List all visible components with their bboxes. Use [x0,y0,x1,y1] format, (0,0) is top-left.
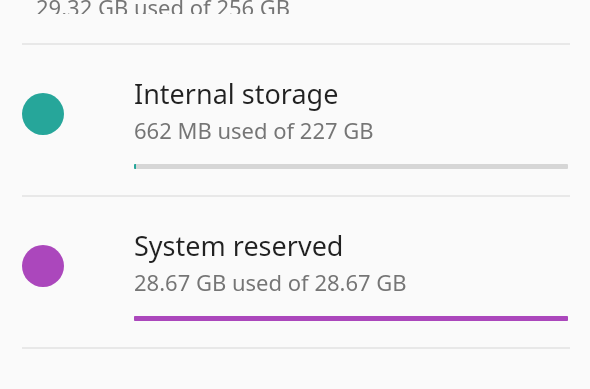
staticText: 29.32 GB used of 256 GB [36,0,291,14]
staticText: 28.67 GB used of 28.67 GB [134,267,407,297]
button[interactable]: System reserved [0,197,590,347]
staticText: 662 MB used of 227 GB [134,115,374,145]
staticText: System reserved [134,227,344,264]
button[interactable]: Internal storage [0,45,590,195]
staticText: Internal storage [134,75,339,112]
